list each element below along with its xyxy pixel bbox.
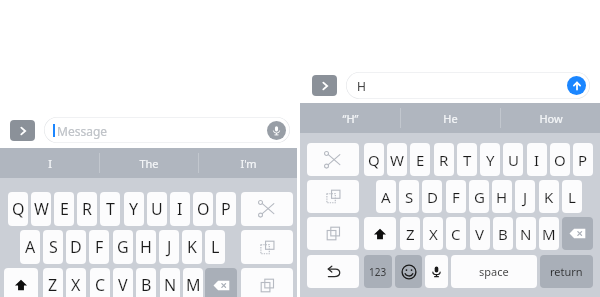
button[interactable]: return (540, 255, 593, 288)
button[interactable]: F (446, 180, 466, 213)
staticText: He (443, 111, 458, 126)
button[interactable]: O (550, 143, 570, 176)
button[interactable]: Message (44, 117, 290, 143)
button[interactable]: Q (8, 192, 28, 226)
button[interactable]: D (66, 230, 86, 264)
button[interactable]: Y (480, 143, 500, 176)
button[interactable]: W (31, 192, 51, 226)
button[interactable]: R (434, 143, 454, 176)
button[interactable]: Delete (562, 217, 593, 250)
button[interactable]: N (160, 268, 180, 297)
button[interactable]: K (539, 180, 559, 213)
button[interactable]: I (170, 192, 190, 226)
button[interactable]: L (205, 230, 225, 264)
staticText: B (141, 274, 152, 296)
button[interactable]: Paste (241, 230, 293, 264)
button[interactable]: T (100, 192, 120, 226)
button[interactable]: L (562, 180, 582, 213)
button[interactable]: Z (400, 217, 420, 250)
button[interactable]: H (492, 180, 512, 213)
staticText: U (508, 150, 519, 170)
button[interactable]: How (501, 103, 600, 133)
staticText: Z (48, 274, 58, 296)
button[interactable]: Y (124, 192, 144, 226)
button[interactable]: X (66, 268, 86, 297)
staticText: T (463, 150, 472, 170)
button[interactable]: W (387, 143, 407, 176)
button[interactable]: Emoji (395, 255, 422, 288)
staticText: space (479, 264, 509, 279)
button[interactable]: Send (567, 76, 586, 95)
button[interactable]: M (183, 268, 203, 297)
staticText: J (167, 236, 172, 258)
button[interactable]: “H” (300, 103, 400, 133)
staticText: N (520, 224, 532, 244)
button[interactable]: K (182, 230, 202, 264)
staticText: H (357, 78, 366, 94)
button[interactable]: Cut (241, 192, 293, 226)
button[interactable]: Shift (4, 268, 38, 297)
button[interactable]: J (159, 230, 179, 264)
button[interactable]: E (54, 192, 74, 226)
staticText: Message (57, 123, 108, 139)
button[interactable]: V (470, 217, 490, 250)
button[interactable]: I (0, 148, 99, 178)
button[interactable]: G (469, 180, 489, 213)
button[interactable]: Copy (307, 217, 359, 250)
button[interactable]: Shift (364, 217, 396, 250)
button[interactable]: Cut (307, 143, 359, 176)
button[interactable]: Expand apps (312, 75, 337, 96)
button[interactable]: Copy (241, 268, 293, 297)
button[interactable]: Z (43, 268, 63, 297)
button[interactable]: P (216, 192, 236, 226)
button[interactable]: V (113, 268, 133, 297)
button[interactable]: N (516, 217, 536, 250)
button[interactable]: The (100, 148, 198, 178)
button[interactable]: T (457, 143, 477, 176)
button[interactable]: He (401, 103, 500, 133)
button[interactable]: 123 (364, 255, 392, 288)
staticText: I (48, 156, 52, 171)
button[interactable]: Dictate (425, 255, 448, 288)
button[interactable]: I (527, 143, 547, 176)
button[interactable]: C (90, 268, 110, 297)
button[interactable]: Paste (307, 180, 359, 213)
button[interactable]: Q (364, 143, 384, 176)
button[interactable]: G (113, 230, 133, 264)
staticText: H (496, 187, 508, 207)
button[interactable]: A (376, 180, 396, 213)
staticText: Z (406, 224, 415, 244)
button[interactable]: F (89, 230, 109, 264)
button[interactable]: M (539, 217, 559, 250)
button[interactable]: Expand apps (10, 120, 35, 141)
button[interactable]: S (43, 230, 63, 264)
staticText: G (117, 236, 129, 258)
staticText: J (523, 187, 528, 207)
button[interactable]: space (451, 255, 537, 288)
staticText: I (177, 198, 183, 220)
button[interactable]: B (136, 268, 156, 297)
staticText: X (71, 274, 81, 296)
button[interactable]: P (573, 143, 593, 176)
button[interactable]: Dictate (267, 121, 286, 140)
button[interactable]: Delete (205, 268, 237, 297)
button[interactable]: I'm (199, 148, 297, 178)
button[interactable]: A (20, 230, 40, 264)
staticText: L (568, 187, 576, 207)
button[interactable]: B (493, 217, 513, 250)
button[interactable]: X (423, 217, 443, 250)
staticText: K (187, 236, 197, 258)
button[interactable]: J (515, 180, 535, 213)
button[interactable]: R (77, 192, 97, 226)
button[interactable]: E (410, 143, 430, 176)
button[interactable]: O (193, 192, 213, 226)
button[interactable]: H (136, 230, 156, 264)
button[interactable]: U (503, 143, 523, 176)
button[interactable]: C (446, 217, 466, 250)
button[interactable]: Undo (307, 255, 359, 288)
staticText: A (25, 236, 36, 258)
button[interactable]: U (147, 192, 167, 226)
button[interactable]: H (346, 72, 590, 99)
button[interactable]: S (399, 180, 419, 213)
button[interactable]: D (422, 180, 442, 213)
